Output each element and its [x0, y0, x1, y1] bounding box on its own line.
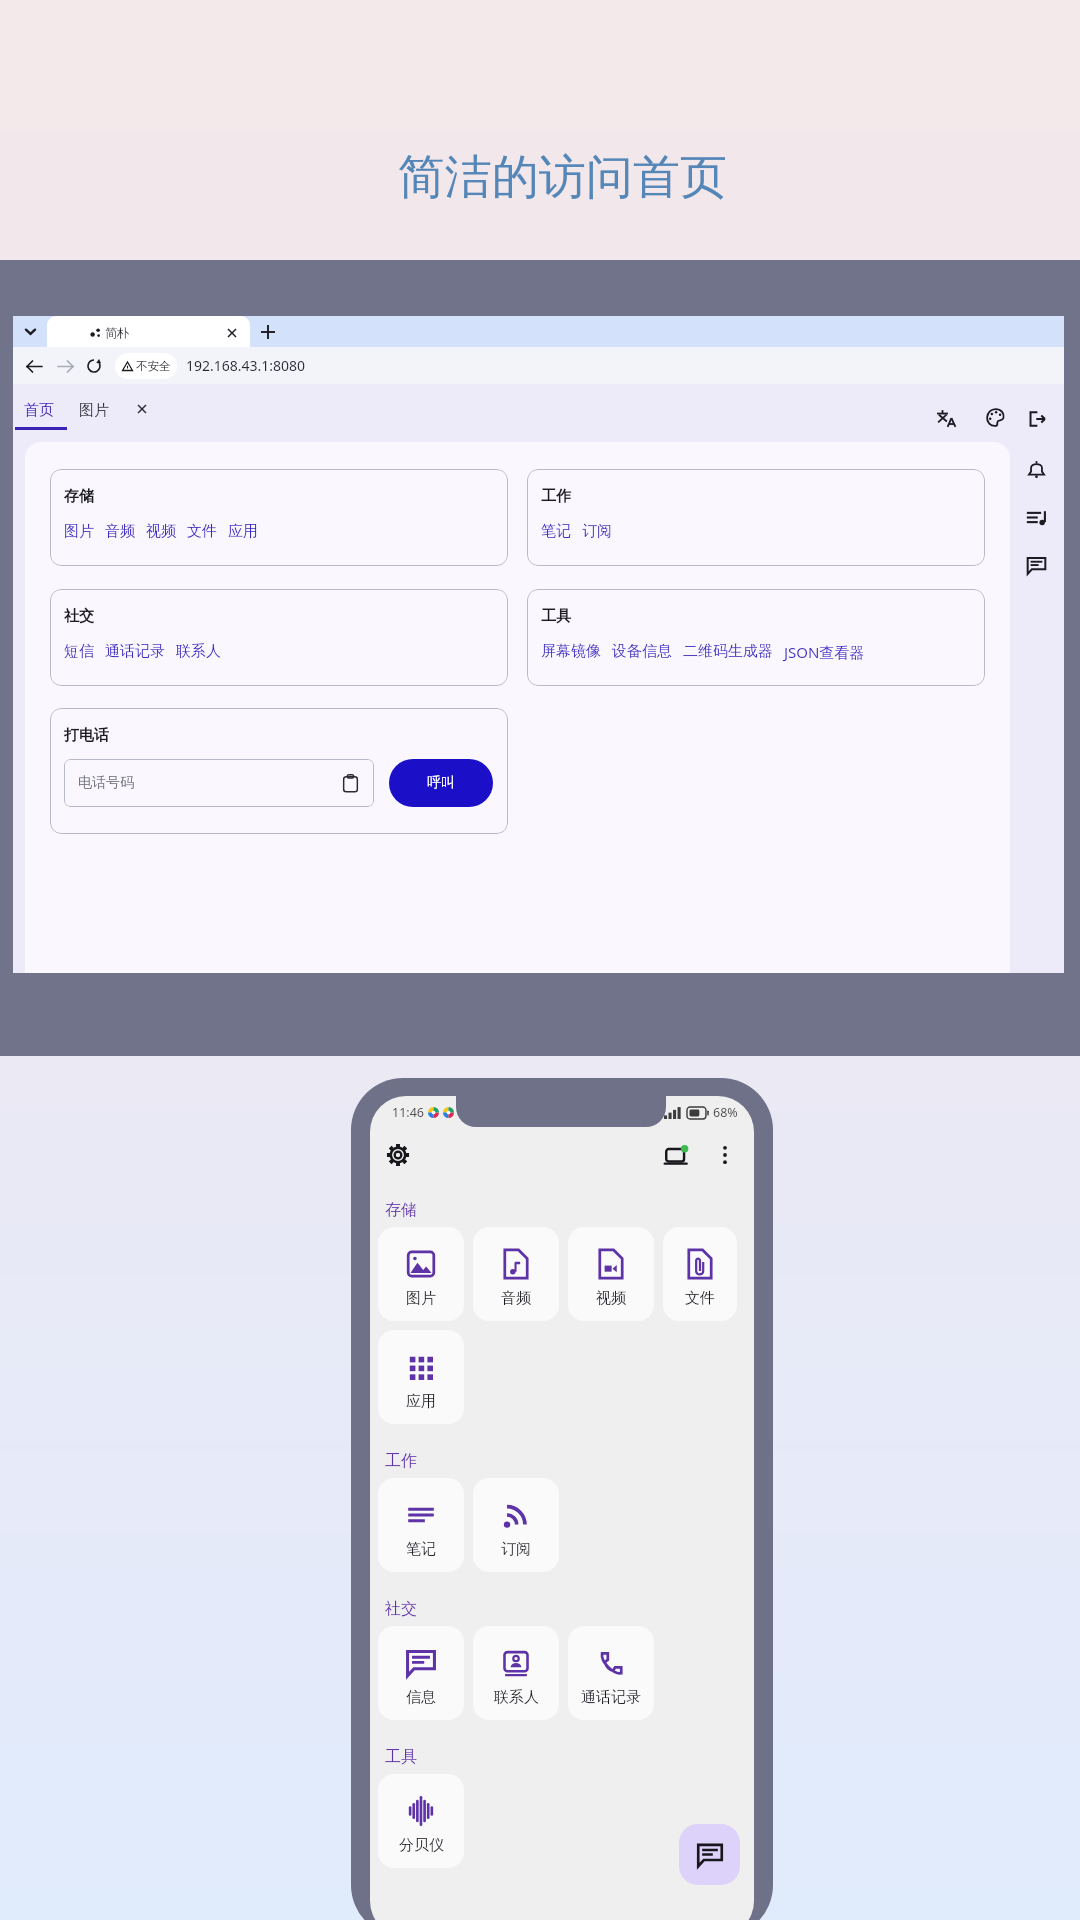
staticText: 192.168.43.1:8080 — [186, 356, 306, 375]
button[interactable]: 订阅 — [473, 1478, 559, 1572]
button[interactable]: 工作 — [527, 469, 985, 566]
button[interactable]: 笔记 — [378, 1478, 464, 1572]
staticText: 联系人 — [494, 1688, 539, 1707]
button[interactable]: 呼叫 — [389, 759, 493, 807]
button[interactable]: Close tab — [127, 394, 157, 424]
button[interactable]: Back — [20, 352, 48, 380]
button[interactable]: 图片 — [75, 384, 119, 442]
button[interactable]: 联系人 — [473, 1626, 559, 1720]
staticText: 图片 — [406, 1289, 436, 1308]
button[interactable]: 图片 — [64, 522, 94, 541]
staticText: 视频 — [596, 1289, 626, 1308]
staticText: 工作 — [385, 1451, 417, 1471]
staticText: 文件 — [685, 1289, 715, 1308]
staticText: 图片 — [79, 401, 109, 420]
button[interactable]: 设备信息 — [612, 642, 672, 661]
staticText: 打电话 — [64, 726, 109, 745]
button[interactable]: 应用 — [228, 522, 258, 541]
button[interactable]: New tab — [250, 316, 286, 347]
staticText: 订阅 — [501, 1540, 531, 1559]
button[interactable]: Paste — [338, 771, 362, 795]
button[interactable]: 电话号码 — [64, 759, 374, 807]
button[interactable]: 音频 — [473, 1227, 559, 1321]
staticText: 应用 — [406, 1392, 436, 1411]
button[interactable]: 音频 — [105, 522, 135, 541]
button[interactable]: Tab list — [13, 316, 47, 347]
button[interactable]: 简朴 — [47, 316, 250, 347]
button[interactable]: 文件 — [187, 522, 217, 541]
button[interactable]: 分贝仪 — [378, 1774, 464, 1868]
button[interactable]: Logout — [1015, 397, 1059, 441]
button[interactable]: Cast to desktop — [656, 1135, 696, 1175]
staticText: 社交 — [385, 1599, 417, 1619]
button[interactable]: 通话记录 — [105, 642, 165, 661]
button[interactable]: 工具 — [527, 589, 985, 686]
button[interactable]: 图片 — [378, 1227, 464, 1321]
button[interactable]: 短信 — [64, 642, 94, 661]
staticText: 存储 — [64, 487, 94, 506]
button[interactable]: 联系人 — [176, 642, 221, 661]
staticText: 存储 — [385, 1200, 417, 1220]
staticText: 呼叫 — [427, 774, 455, 792]
button[interactable]: 应用 — [378, 1330, 464, 1424]
button[interactable]: 不安全 — [115, 353, 177, 379]
staticText: 简洁的访问首页 — [398, 148, 727, 207]
button[interactable]: 订阅 — [582, 522, 612, 541]
button[interactable]: 信息 — [378, 1626, 464, 1720]
button[interactable]: 屏幕镜像 — [541, 642, 601, 661]
button[interactable]: 视频 — [146, 522, 176, 541]
button[interactable]: 通话记录 — [568, 1626, 654, 1720]
button[interactable]: 社交 — [50, 589, 508, 686]
button[interactable]: Open chat — [679, 1824, 740, 1885]
staticText: 工作 — [541, 487, 571, 506]
button[interactable]: Settings — [378, 1135, 418, 1175]
staticText: 电话号码 — [78, 774, 134, 792]
staticText: 首页 — [24, 401, 54, 420]
button[interactable]: JSON查看器 — [784, 642, 865, 662]
button[interactable]: Reload — [81, 353, 107, 379]
button[interactable]: 文件 — [663, 1227, 737, 1321]
button[interactable]: Messages — [1014, 543, 1058, 587]
button[interactable]: 二维码生成器 — [683, 642, 773, 661]
staticText: 笔记 — [406, 1540, 436, 1559]
button[interactable]: Notifications — [1014, 447, 1058, 491]
staticText: 11:46 — [392, 1104, 424, 1121]
button[interactable]: More options — [708, 1138, 742, 1172]
button[interactable]: 首页 — [15, 384, 67, 442]
button[interactable]: Playlist — [1014, 495, 1058, 539]
button[interactable]: 笔记 — [541, 522, 571, 541]
button[interactable]: 视频 — [568, 1227, 654, 1321]
staticText: 音频 — [501, 1289, 531, 1308]
staticText: 简朴 — [105, 325, 129, 340]
button[interactable]: Translate — [924, 396, 968, 440]
button[interactable]: Theme — [973, 395, 1017, 439]
button[interactable]: 存储 — [50, 469, 508, 566]
staticText: 不安全 — [136, 359, 171, 373]
button[interactable]: Close tab — [221, 322, 243, 344]
staticText: 通话记录 — [581, 1688, 641, 1707]
staticText: 工具 — [541, 607, 571, 626]
staticText: 信息 — [406, 1688, 436, 1707]
staticText: 68% — [713, 1104, 738, 1121]
button[interactable]: Forward — [51, 352, 79, 380]
staticText: 分贝仪 — [399, 1836, 444, 1855]
staticText: 工具 — [385, 1747, 417, 1767]
staticText: 社交 — [64, 607, 94, 626]
